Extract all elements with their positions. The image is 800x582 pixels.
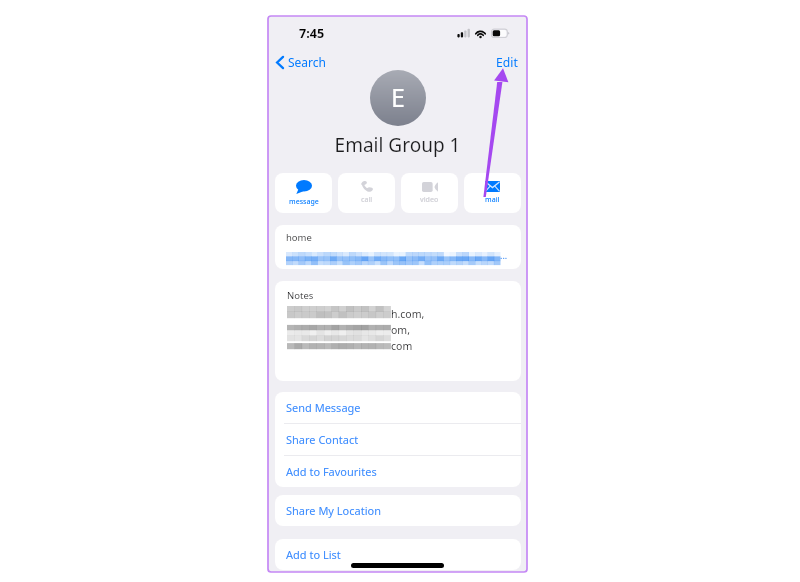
staticText: Share Contact [286,432,359,447]
staticText: Add to List [286,547,341,562]
button[interactable]: Mail [464,173,521,213]
staticText: message [289,197,319,207]
button[interactable]: Message [275,173,332,213]
button[interactable]: Call [338,173,395,213]
staticText: video [420,195,439,205]
staticText: Share My Location [286,503,381,518]
staticText: Add to Favourites [286,464,377,479]
staticText: om, [391,323,410,337]
staticText: h.com, [391,307,425,321]
button[interactable]: Share Contact [275,424,521,455]
staticText: com [391,339,413,353]
button[interactable]: Add to Favourites [275,456,521,487]
staticText: Edit [496,54,518,70]
button[interactable]: Notes [275,281,521,381]
button[interactable]: Video [401,173,458,213]
button[interactable]: Send Message [275,392,521,423]
staticText: home [286,231,312,244]
staticText: call [361,195,373,205]
staticText: Notes [287,289,314,302]
button[interactable]: Contact photo, Email Group 1 [370,70,426,126]
staticText: 7:45 [299,25,325,42]
button[interactable]: Add to List [275,539,521,570]
button[interactable]: Share My Location [275,495,521,526]
button[interactable]: Edit [496,54,518,70]
staticText: Search [288,54,326,70]
staticText: ... [500,249,508,261]
button[interactable]: Back to Search [276,54,326,70]
staticText: E [391,80,405,114]
staticText: mail [485,195,500,205]
button[interactable]: home [275,225,521,269]
staticText: Send Message [286,400,361,415]
staticText: Email Group 1 [268,132,527,158]
